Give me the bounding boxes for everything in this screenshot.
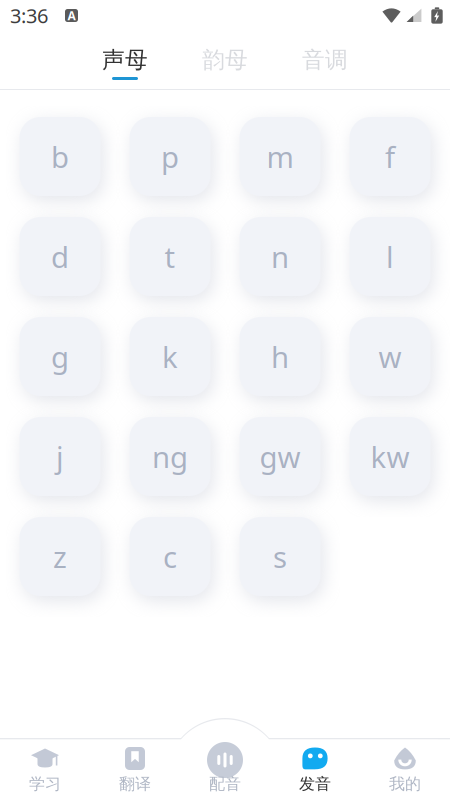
button[interactable]: l xyxy=(349,217,430,296)
button[interactable]: k xyxy=(129,317,210,396)
staticText: g xyxy=(51,337,69,376)
staticText: t xyxy=(164,237,175,276)
staticText: f xyxy=(385,137,395,176)
button[interactable]: d xyxy=(19,217,100,296)
button[interactable]: 配音 xyxy=(180,738,270,800)
button[interactable]: 发音 xyxy=(270,738,360,800)
button[interactable]: t xyxy=(129,217,210,296)
staticText: h xyxy=(271,337,289,376)
button[interactable]: h xyxy=(239,317,320,396)
staticText: l xyxy=(386,237,394,276)
button[interactable]: 翻译 xyxy=(90,738,180,800)
button[interactable]: z xyxy=(19,517,100,596)
staticText: A xyxy=(67,7,75,23)
staticText: s xyxy=(273,537,287,576)
staticText: p xyxy=(161,137,179,176)
staticText: j xyxy=(56,437,64,476)
staticText: c xyxy=(163,537,177,576)
button[interactable]: f xyxy=(349,117,430,196)
button[interactable]: 我的 xyxy=(360,738,450,800)
button[interactable]: ng xyxy=(129,417,210,496)
button[interactable]: p xyxy=(129,117,210,196)
staticText: 韵母 xyxy=(202,46,248,74)
staticText: ng xyxy=(152,437,188,476)
button[interactable]: 学习 xyxy=(0,738,90,800)
staticText: 声母 xyxy=(102,46,148,74)
button[interactable]: 音调 xyxy=(275,31,375,89)
staticText: 发音 xyxy=(299,774,331,794)
button[interactable]: 韵母 xyxy=(175,31,275,89)
staticText: 配音 xyxy=(209,774,241,794)
staticText: 我的 xyxy=(389,774,421,794)
staticText: gw xyxy=(259,437,300,476)
button[interactable]: kw xyxy=(349,417,430,496)
staticText: 翻译 xyxy=(119,774,151,794)
staticText: z xyxy=(53,537,67,576)
staticText: 音调 xyxy=(302,46,348,74)
button[interactable]: gw xyxy=(239,417,320,496)
button[interactable]: g xyxy=(19,317,100,396)
staticText: 学习 xyxy=(29,774,61,794)
button[interactable]: 声母 xyxy=(75,31,175,89)
staticText: m xyxy=(266,137,293,176)
button[interactable]: w xyxy=(349,317,430,396)
button[interactable]: b xyxy=(19,117,100,196)
staticText: d xyxy=(51,237,69,276)
staticText: kw xyxy=(370,437,409,476)
staticText: w xyxy=(378,337,401,376)
staticText: k xyxy=(162,337,178,376)
staticText: 3:36 xyxy=(10,2,48,29)
button[interactable]: m xyxy=(239,117,320,196)
button[interactable]: n xyxy=(239,217,320,296)
staticText: b xyxy=(51,137,69,176)
button[interactable]: s xyxy=(239,517,320,596)
staticText: n xyxy=(271,237,289,276)
button[interactable]: j xyxy=(19,417,100,496)
button[interactable]: c xyxy=(129,517,210,596)
